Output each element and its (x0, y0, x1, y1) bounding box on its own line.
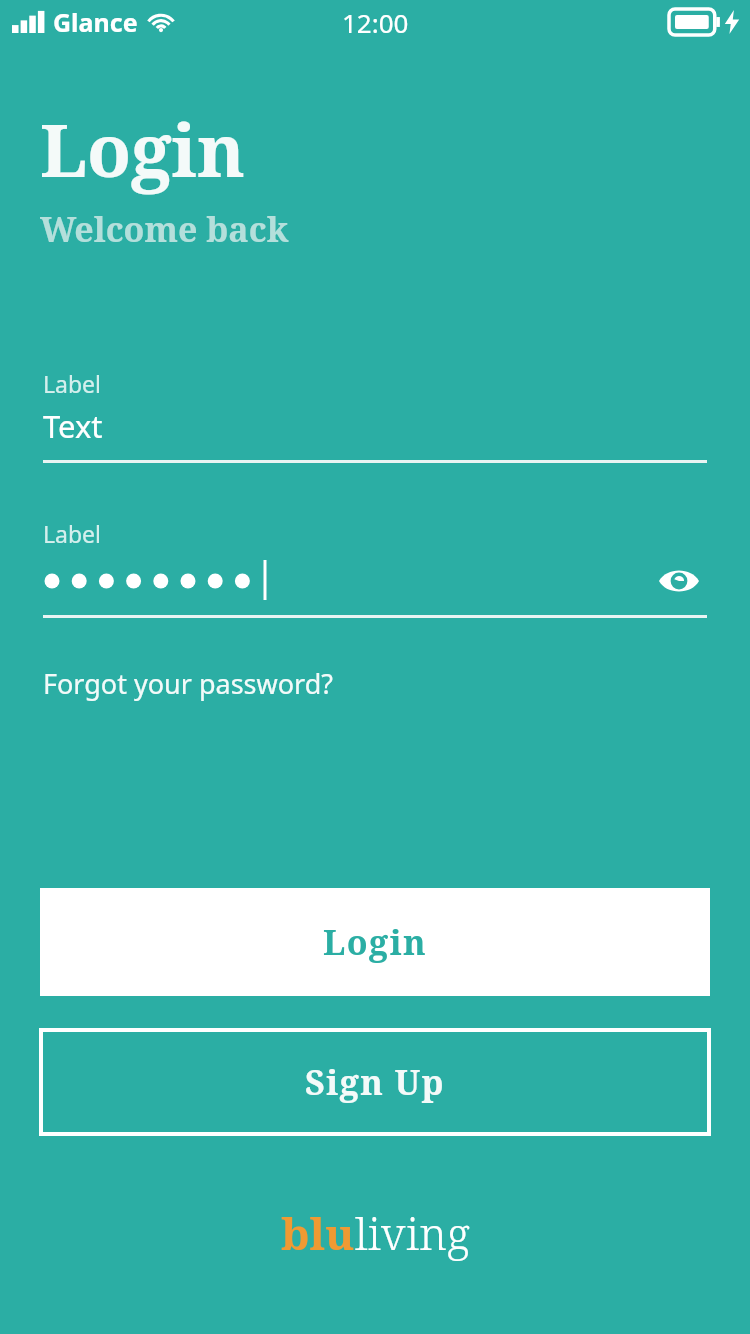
staticText: 12:00 (342, 5, 409, 40)
staticText: Label (43, 368, 102, 399)
staticText: Welcome back (40, 206, 289, 252)
button[interactable]: Label (43, 368, 707, 463)
button[interactable]: Show password (651, 559, 707, 603)
staticText: Glance (53, 5, 138, 39)
staticText: Label (43, 518, 102, 549)
button[interactable]: Forgot your password? (43, 665, 334, 702)
staticText: Forgot your password? (43, 665, 334, 702)
staticText: Sign Up (305, 1059, 446, 1105)
button[interactable]: Login (40, 888, 710, 996)
staticText: Login (323, 919, 428, 965)
staticText: blu (281, 1203, 355, 1263)
button[interactable]: Sign Up (39, 1028, 711, 1136)
staticText: Login (40, 100, 245, 198)
staticText: living (355, 1203, 470, 1263)
staticText: Text (43, 405, 103, 447)
